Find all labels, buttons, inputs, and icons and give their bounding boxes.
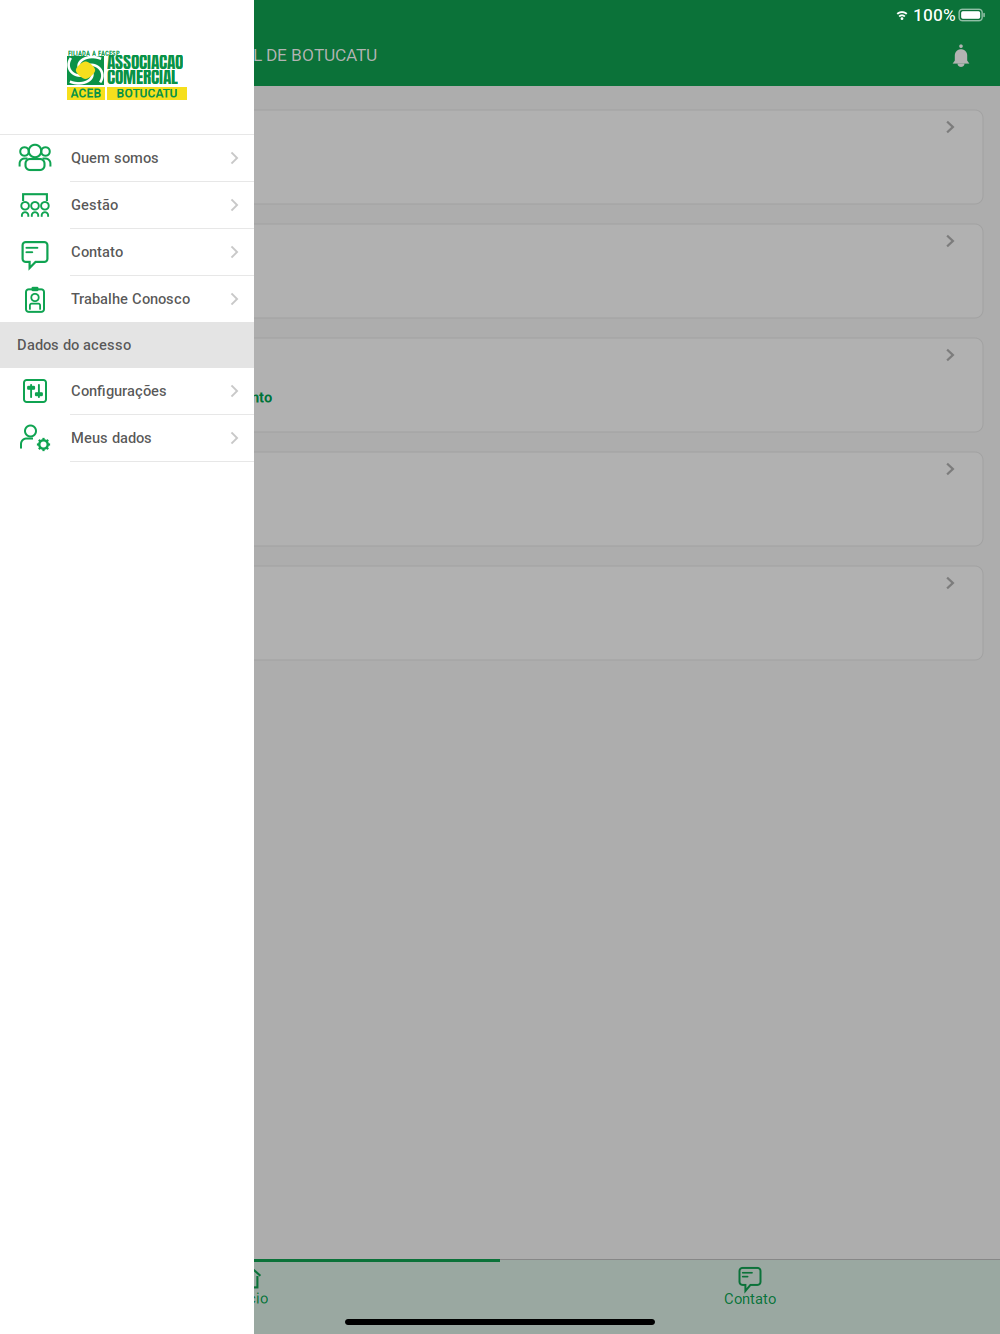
staticText: ASSOCIAÇÃO COMERCIAL DE BOTUCATU	[59, 45, 377, 65]
staticText: Contato	[71, 243, 123, 261]
staticText: Trabalhe Conosco	[71, 290, 190, 308]
staticText: Notícias	[33, 161, 88, 178]
button[interactable]: Configurações	[0, 368, 254, 415]
button[interactable]: Contato	[500, 1261, 1000, 1308]
staticText: Dados do acesso	[17, 336, 131, 354]
staticText: FILIADA À FACESP	[68, 50, 120, 57]
staticText: ASSOCIAÇÃO	[107, 49, 183, 75]
staticText: Quem somos	[71, 149, 159, 167]
button[interactable]: Sistema de Consulta e Atendimento	[17, 338, 983, 432]
staticText: Gestão	[71, 196, 118, 214]
button[interactable]: Trabalhe Conosco	[0, 276, 254, 322]
staticText: Contato	[724, 1290, 776, 1308]
staticText: ACEB	[70, 86, 101, 101]
staticText: Configurações	[71, 382, 167, 400]
button[interactable]: Notificações	[936, 29, 986, 81]
button[interactable]: Eventos	[17, 224, 983, 318]
staticText: COMERCIAL	[107, 64, 178, 90]
staticText: Início	[232, 1290, 268, 1307]
staticText: Eventos	[33, 275, 85, 292]
button[interactable]: Contato	[0, 229, 254, 276]
button[interactable]: Quem somos	[0, 135, 254, 182]
button[interactable]: Notícias	[17, 110, 983, 204]
button[interactable]: Início	[0, 1262, 500, 1307]
staticText: Sistema de Consulta e Atendimento	[33, 389, 272, 406]
staticText: Meus dados	[71, 429, 152, 447]
button[interactable]: Parceiros	[17, 566, 983, 660]
staticText: 100%	[913, 5, 956, 25]
button[interactable]: Serviços	[17, 452, 983, 546]
staticText: BOTUCATU	[116, 86, 177, 101]
button[interactable]: Gestão	[0, 182, 254, 229]
button[interactable]: Meus dados	[0, 415, 254, 462]
